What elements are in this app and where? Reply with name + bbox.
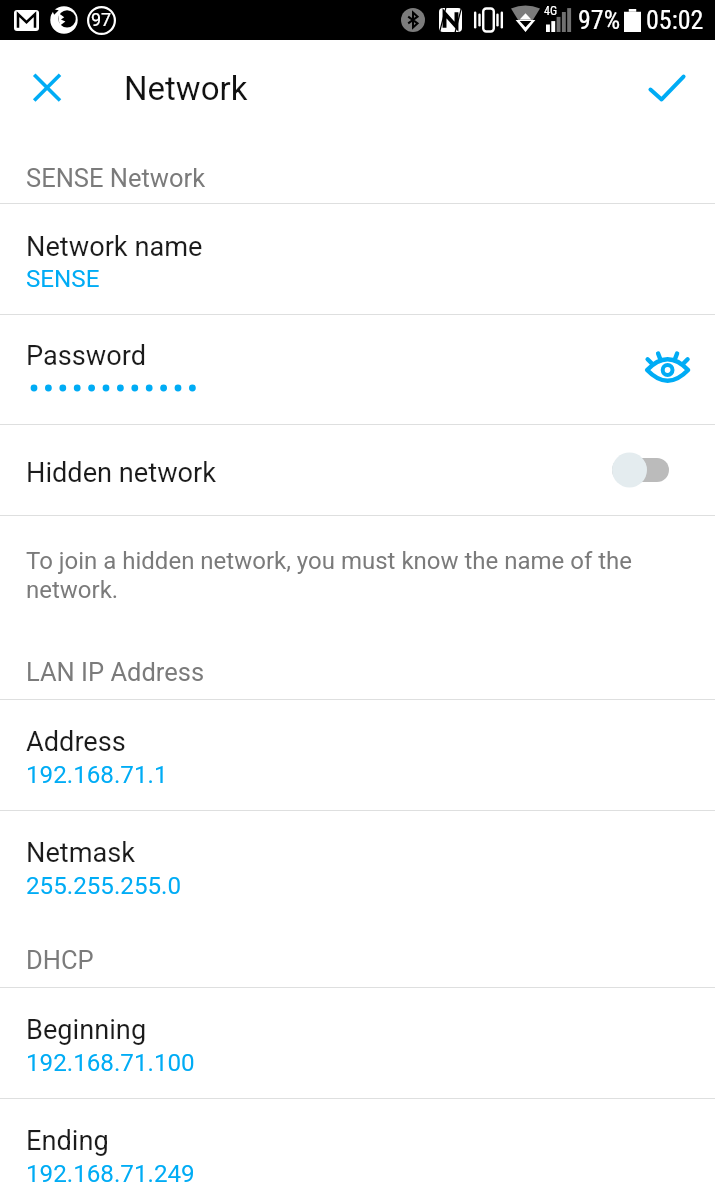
staticText: Ending bbox=[26, 1125, 109, 1157]
staticText: Password bbox=[26, 340, 147, 372]
staticText: Netmask bbox=[26, 837, 136, 869]
staticText: 255.255.255.0 bbox=[26, 872, 182, 900]
staticText: 4G bbox=[544, 4, 558, 18]
staticText: 97 bbox=[91, 9, 112, 30]
staticText: LAN IP Address bbox=[26, 657, 205, 687]
staticText: Network name bbox=[26, 231, 203, 263]
button[interactable]: Close bbox=[17, 58, 77, 118]
staticText: Network bbox=[124, 69, 248, 108]
staticText: 192.168.71.1 bbox=[26, 761, 168, 789]
staticText: SENSE Network bbox=[26, 163, 206, 193]
button[interactable]: Hidden network toggle bbox=[600, 445, 684, 495]
staticText: Hidden network bbox=[26, 457, 217, 489]
button[interactable]: Ending bbox=[0, 1098, 715, 1200]
button[interactable]: Address bbox=[0, 699, 715, 810]
staticText: Beginning bbox=[26, 1014, 147, 1046]
button[interactable]: Show password bbox=[639, 342, 696, 399]
button[interactable]: Netmask bbox=[0, 810, 715, 921]
button[interactable]: Network name bbox=[0, 203, 715, 314]
staticText: Address bbox=[26, 726, 126, 758]
staticText: 97% bbox=[578, 5, 621, 35]
staticText: To join a hidden network, you must know … bbox=[26, 547, 651, 604]
staticText: DHCP bbox=[26, 945, 94, 975]
staticText: 192.168.71.100 bbox=[26, 1049, 195, 1077]
button[interactable]: Password bbox=[0, 314, 715, 424]
button[interactable]: Beginning bbox=[0, 987, 715, 1098]
staticText: SENSE bbox=[26, 265, 100, 293]
staticText: 05:02 bbox=[646, 5, 704, 35]
staticText: 192.168.71.249 bbox=[26, 1160, 195, 1188]
button[interactable]: Done bbox=[637, 58, 697, 118]
button[interactable]: Hidden network bbox=[0, 424, 715, 515]
